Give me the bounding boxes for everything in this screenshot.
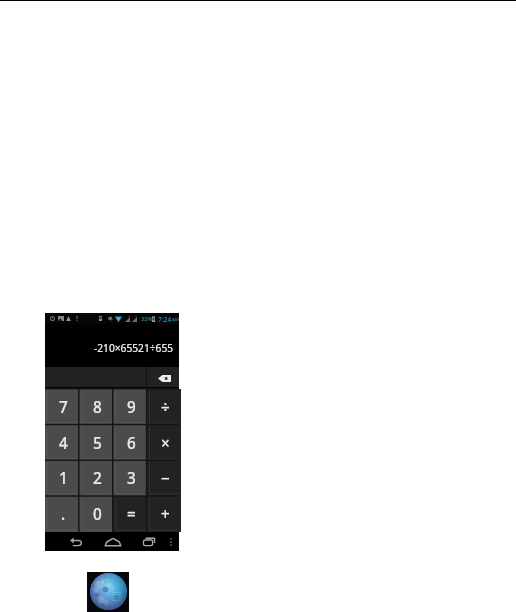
staticText: 1 [59,468,68,489]
staticText: -210×65521÷655 [94,341,174,355]
staticText: 7:24 [158,315,172,324]
button[interactable]: 5 [79,425,113,461]
staticText: 3 [127,468,136,489]
button[interactable]: + [147,496,181,532]
staticText: 6 [127,433,136,454]
button[interactable]: 4 [45,425,79,461]
button[interactable]: 0 [79,496,113,532]
staticText: 32% [141,315,153,323]
button[interactable]: 7 [45,389,79,425]
button[interactable]: = [113,496,147,532]
button[interactable]: . [45,496,79,532]
button[interactable]: More options [164,532,178,551]
staticText: 4 [59,433,68,454]
staticText: 5 [93,433,102,454]
button[interactable]: 6 [113,425,147,461]
staticText: 0 [93,504,102,525]
staticText: AM [172,317,179,323]
button[interactable]: − [147,460,181,496]
button[interactable]: 3 [113,460,147,496]
staticText: × [161,433,170,454]
button[interactable]: 9 [113,389,147,425]
button[interactable]: ÷ [147,389,181,425]
staticText: + [161,504,170,525]
button[interactable]: 1 [45,460,79,496]
button[interactable]: Back [65,532,87,551]
staticText: − [161,468,170,489]
staticText: . [61,504,66,525]
staticText: 8 [93,397,102,418]
staticText: 9 [127,397,136,418]
button[interactable]: 8 [79,389,113,425]
button[interactable]: Delete [147,367,181,387]
button[interactable]: 2 [79,460,113,496]
staticText: ÷ [161,397,170,418]
button[interactable]: × [147,425,181,461]
staticText: 2 [93,468,102,489]
button[interactable]: Recents [138,532,160,551]
button[interactable]: Home [102,532,124,551]
staticText: 7 [59,397,68,418]
staticText: = [127,504,136,525]
button[interactable]: Internet browser [87,572,129,612]
